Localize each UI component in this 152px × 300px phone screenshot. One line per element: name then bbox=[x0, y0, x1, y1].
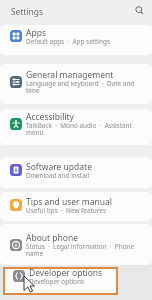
staticText: Tips and user manual bbox=[26, 196, 112, 208]
staticText: Download and install bbox=[26, 171, 90, 180]
staticText: Useful tips · New features bbox=[26, 206, 106, 215]
staticText: TalkBack · Mono audio · Assistant bbox=[26, 121, 132, 130]
staticText: General management bbox=[26, 69, 114, 81]
staticText: Language and keyboard · Date and bbox=[26, 79, 135, 88]
button[interactable]: Developer options bbox=[3, 267, 118, 295]
button[interactable]: About phone bbox=[0, 224, 152, 265]
button[interactable]: Search bbox=[134, 5, 145, 16]
staticText: Apps bbox=[26, 27, 46, 39]
button[interactable]: Accessibility bbox=[0, 109, 152, 145]
staticText: Status · Legal information · Phone bbox=[26, 242, 135, 251]
button[interactable]: Tips and user manual bbox=[0, 192, 152, 221]
staticText: name bbox=[26, 249, 44, 258]
staticText: Accessibility bbox=[26, 111, 74, 123]
staticText: Default apps · App settings bbox=[26, 37, 110, 46]
staticText: Developer options bbox=[29, 267, 103, 279]
staticText: time bbox=[26, 86, 40, 95]
staticText: Developer options bbox=[29, 277, 84, 286]
staticText: Settings bbox=[11, 6, 43, 17]
staticText: About phone bbox=[26, 232, 79, 244]
button[interactable]: Apps bbox=[0, 25, 152, 55]
button[interactable]: Software update bbox=[0, 157, 152, 188]
staticText: Software update bbox=[26, 161, 92, 173]
button[interactable]: General management bbox=[0, 64, 152, 104]
staticText: menu bbox=[26, 128, 44, 137]
